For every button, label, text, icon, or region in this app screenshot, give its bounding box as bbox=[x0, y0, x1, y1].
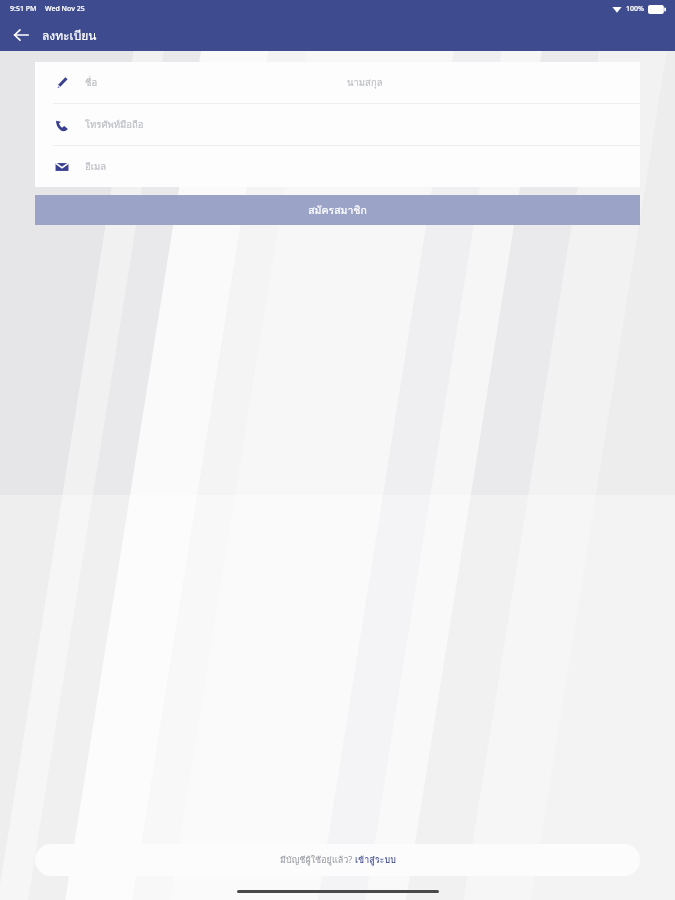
staticText: นามสกุล bbox=[347, 75, 383, 90]
button[interactable]: Email bbox=[35, 146, 640, 187]
button[interactable]: Back bbox=[6, 20, 36, 50]
button[interactable]: Mobile phone bbox=[35, 104, 640, 145]
staticText: Wed Nov 25 bbox=[45, 4, 85, 14]
staticText: สมัครสมาชิก bbox=[308, 202, 367, 219]
other: Mobile phone bbox=[53, 116, 71, 134]
button[interactable]: มีบัญชีผู้ใช้อยู่แล้ว? bbox=[35, 844, 640, 876]
button[interactable]: Name bbox=[35, 62, 640, 103]
other: Name bbox=[53, 74, 71, 92]
staticText: ชื่อ bbox=[85, 75, 98, 90]
button[interactable]: สมัครสมาชิก bbox=[35, 195, 640, 225]
staticText: อีเมล bbox=[85, 159, 107, 174]
staticText: 9:51 PM bbox=[10, 4, 37, 14]
staticText: เข้าสู่ระบบ bbox=[355, 853, 396, 867]
staticText: มีบัญชีผู้ใช้อยู่แล้ว? bbox=[280, 853, 355, 867]
staticText: โทรศัพท์มือถือ bbox=[85, 117, 144, 132]
staticText: 100% bbox=[626, 4, 644, 14]
other: Email bbox=[53, 158, 71, 176]
staticText: ลงทะเบียน bbox=[42, 26, 97, 45]
